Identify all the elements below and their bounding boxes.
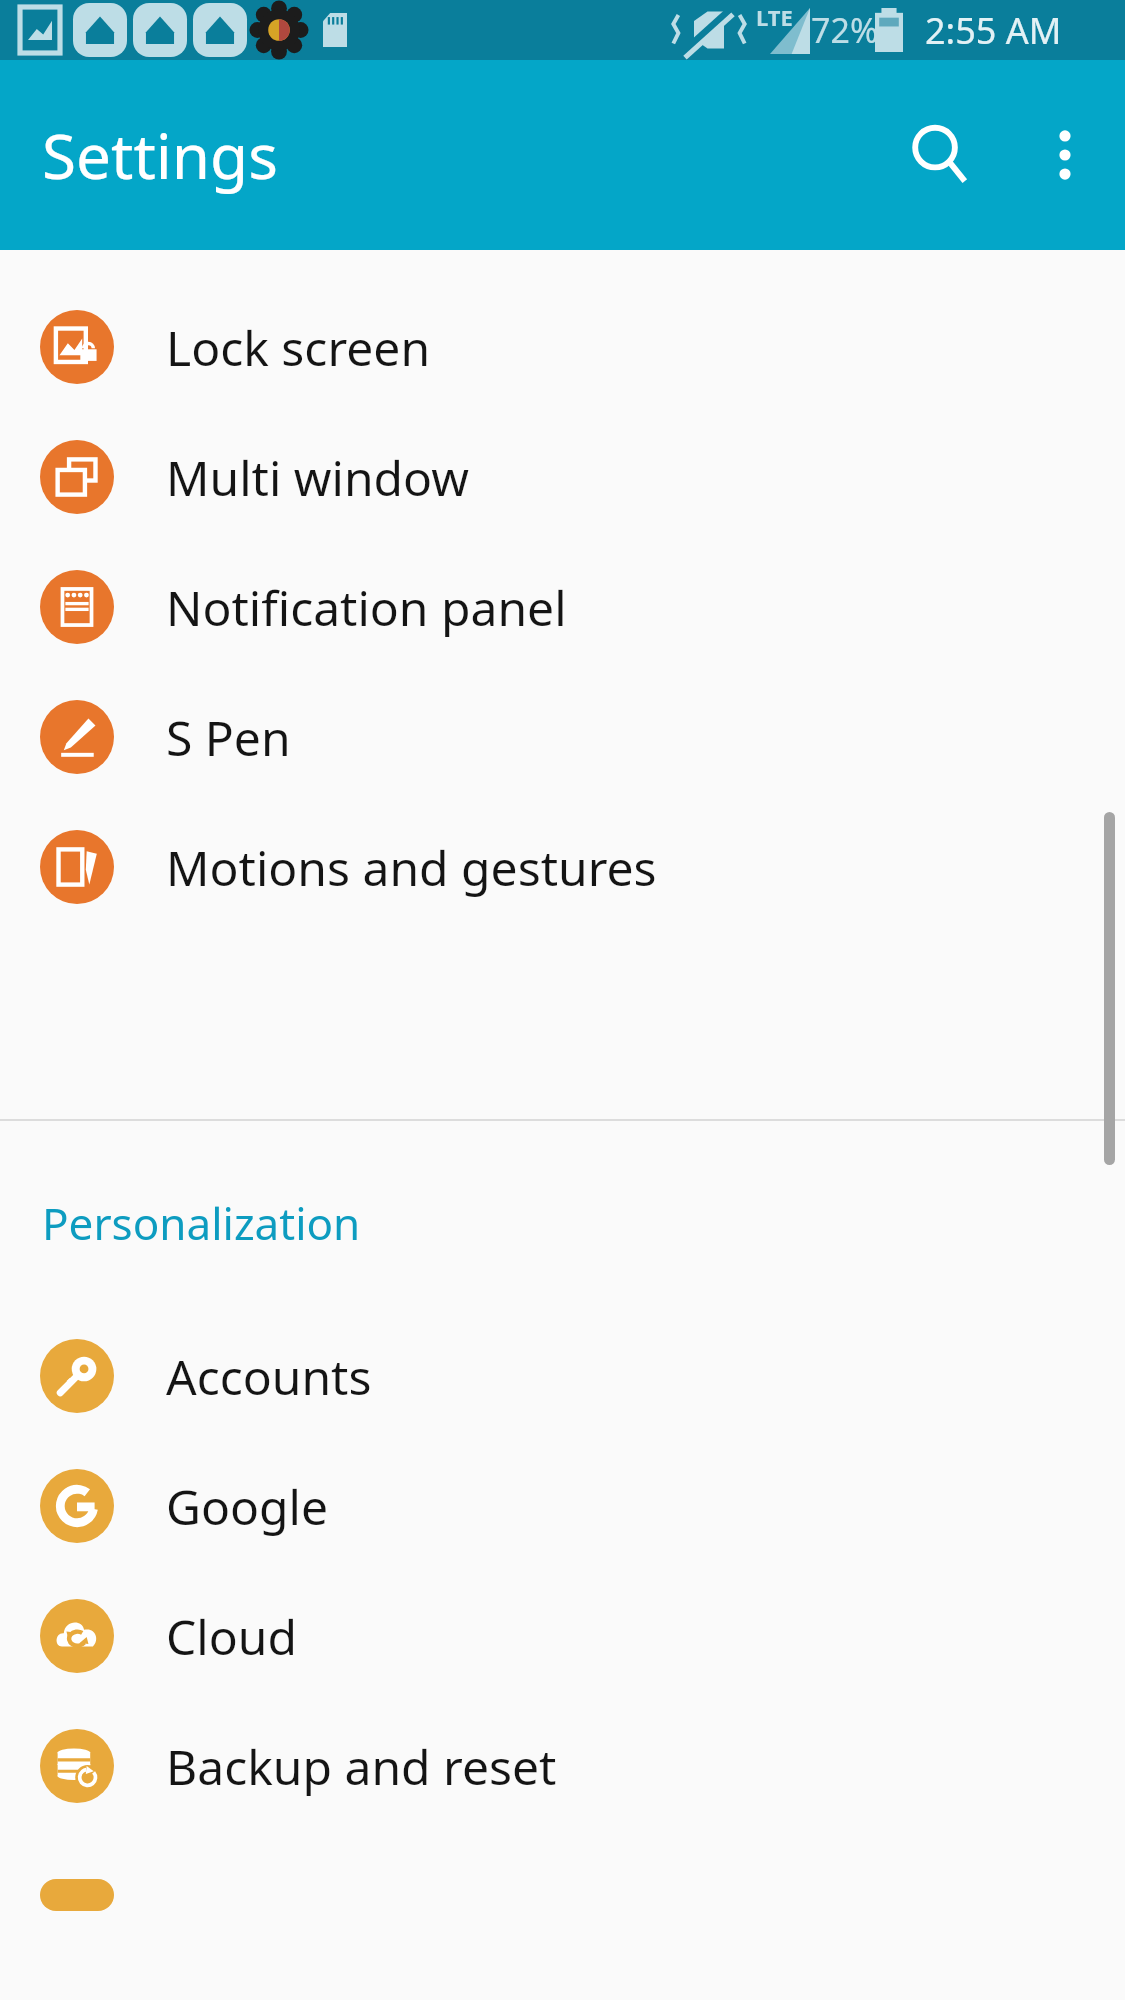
- staticText: 72%: [811, 7, 879, 53]
- button[interactable]: Multi window: [0, 412, 1125, 542]
- staticText: Notification panel: [166, 575, 567, 640]
- staticText: Lock screen: [166, 315, 431, 380]
- staticText: 2:55 AM: [925, 6, 1062, 55]
- staticText: Google: [166, 1474, 329, 1539]
- button[interactable]: Backup and reset: [0, 1701, 1125, 1831]
- button[interactable]: More options: [1005, 95, 1125, 215]
- staticText: Settings: [42, 113, 278, 197]
- button[interactable]: S Pen: [0, 672, 1125, 802]
- button[interactable]: Lock screen: [0, 282, 1125, 412]
- staticText: Motions and gestures: [166, 835, 657, 900]
- button[interactable]: Google: [0, 1441, 1125, 1571]
- staticText: Backup and reset: [166, 1734, 557, 1799]
- button[interactable]: Search: [875, 90, 1005, 220]
- staticText: S Pen: [166, 705, 291, 770]
- staticText: Accounts: [166, 1344, 372, 1409]
- button[interactable]: Cloud: [0, 1571, 1125, 1701]
- button[interactable]: Notification panel: [0, 542, 1125, 672]
- staticText: Cloud: [166, 1604, 297, 1669]
- staticText: Multi window: [166, 445, 469, 510]
- button[interactable]: Motions and gestures: [0, 802, 1125, 932]
- button[interactable]: Accounts: [0, 1311, 1125, 1441]
- staticText: Personalization: [42, 1193, 361, 1253]
- staticText: LTE: [756, 2, 793, 32]
